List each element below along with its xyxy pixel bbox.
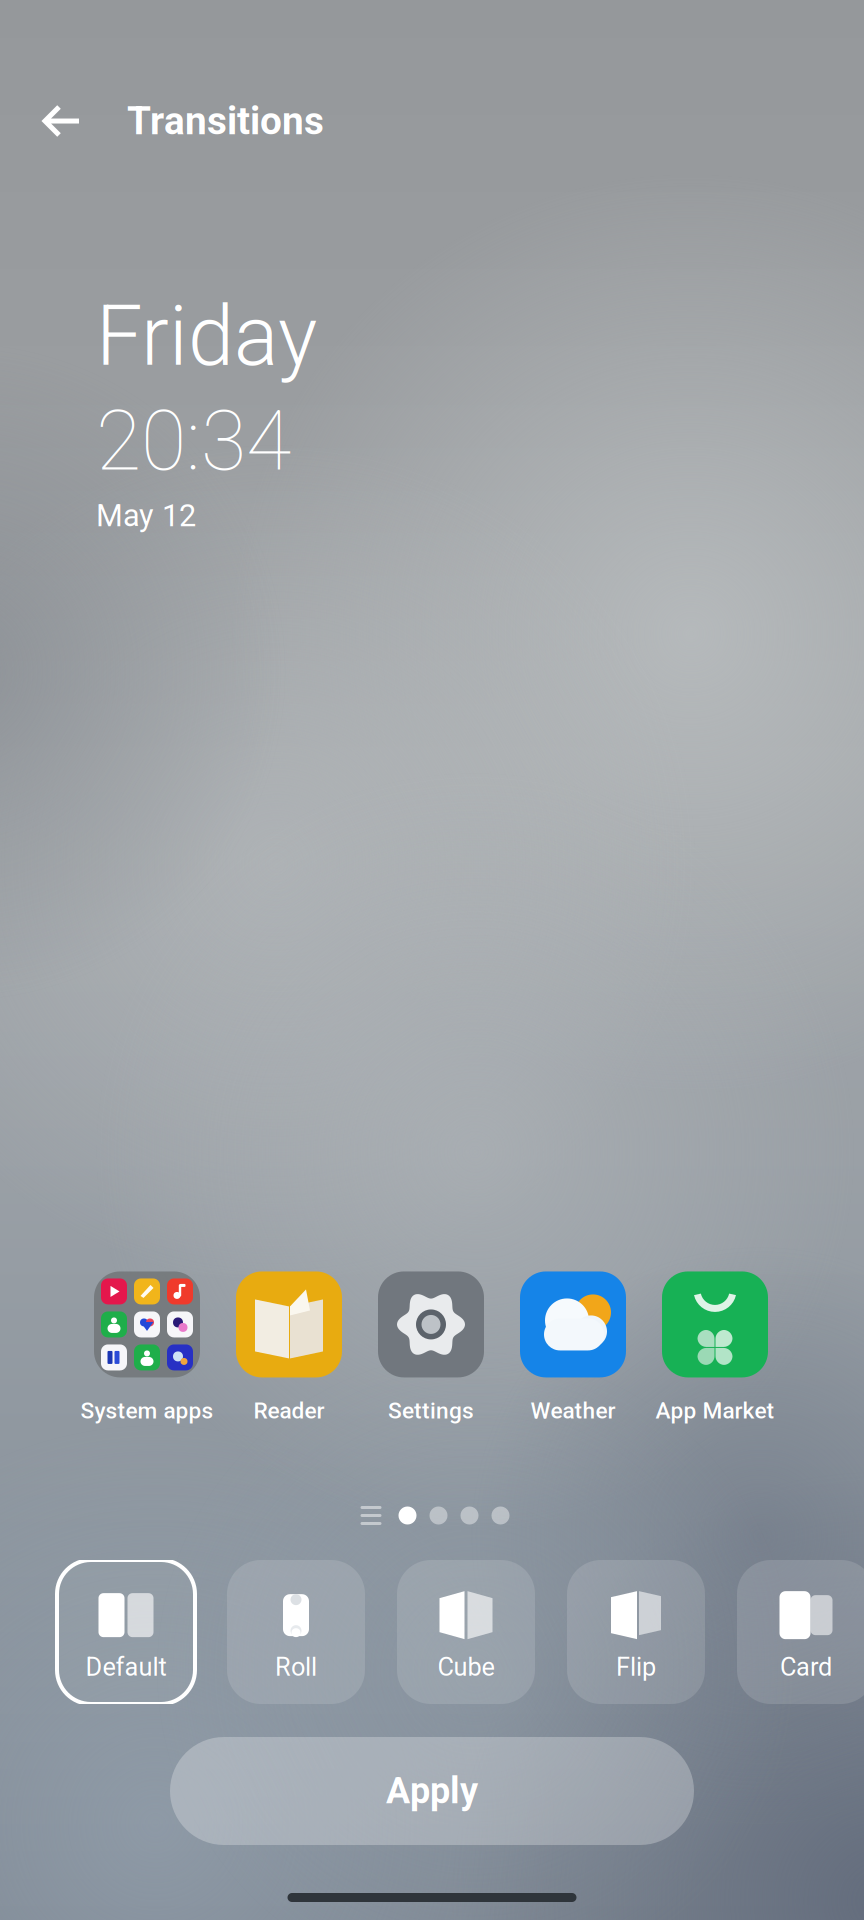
button[interactable]: Roll <box>227 1560 365 1704</box>
button[interactable]: Flip <box>567 1560 705 1704</box>
staticText: Settings <box>388 1397 474 1424</box>
button[interactable]: Cube <box>397 1560 535 1704</box>
staticText: May 12 <box>96 498 196 534</box>
staticText: Flip <box>616 1652 656 1682</box>
staticText: Apply <box>386 1770 478 1812</box>
staticText: Transitions <box>127 98 324 144</box>
staticText: Roll <box>275 1652 317 1682</box>
button[interactable]: App Market <box>644 1271 786 1424</box>
staticText: Default <box>85 1652 166 1682</box>
button[interactable]: Reader <box>218 1271 360 1424</box>
button[interactable]: Default <box>57 1560 195 1704</box>
button[interactable]: Card <box>737 1560 864 1704</box>
button[interactable]: System apps <box>76 1271 218 1424</box>
staticText: Reader <box>253 1397 324 1424</box>
button[interactable]: Weather <box>502 1271 644 1424</box>
button[interactable]: Settings <box>360 1271 502 1424</box>
staticText: 20:34 <box>96 393 291 490</box>
staticText: Friday <box>96 288 317 385</box>
staticText: Weather <box>530 1397 615 1424</box>
button[interactable]: Apply <box>170 1737 694 1845</box>
staticText: App Market <box>655 1397 774 1424</box>
button[interactable]: Back <box>19 78 105 164</box>
staticText: Card <box>780 1652 832 1682</box>
staticText: Cube <box>437 1652 494 1682</box>
staticText: System apps <box>80 1397 213 1424</box>
